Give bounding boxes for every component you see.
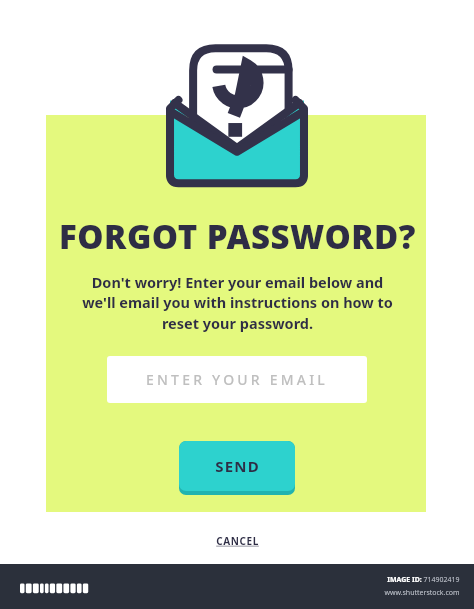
staticText: 714902419 xyxy=(423,575,460,585)
staticText: FORGOT PASSWORD? xyxy=(59,214,416,259)
button[interactable]: ENTER YOUR EMAIL xyxy=(107,356,367,403)
staticText: IMAGE ID: xyxy=(386,575,423,585)
other: shutterstock xyxy=(20,578,132,596)
button[interactable]: CANCEL xyxy=(210,531,265,551)
staticText: Don't worry! Enter your email below and … xyxy=(82,272,393,334)
button[interactable]: SEND xyxy=(179,441,295,495)
staticText: ENTER YOUR EMAIL xyxy=(146,370,328,389)
staticText: SEND xyxy=(215,456,260,476)
staticText: CANCEL xyxy=(216,534,259,548)
staticText: www.shutterstock.com xyxy=(384,588,460,598)
